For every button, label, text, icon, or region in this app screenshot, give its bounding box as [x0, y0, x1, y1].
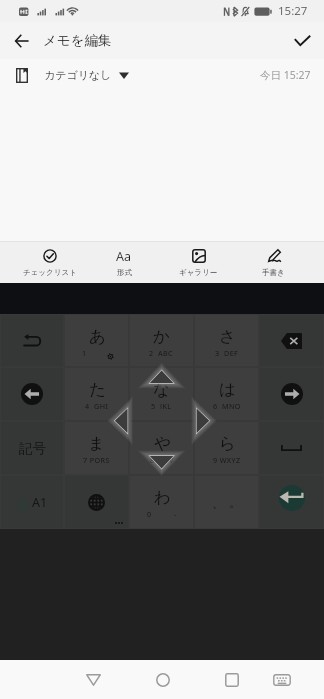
staticText: 記号: [19, 440, 46, 457]
staticText: 8 TUV: [150, 455, 174, 463]
button[interactable]: 🌐: [65, 476, 128, 528]
button[interactable]: チェックリスト: [13, 242, 87, 283]
staticText: な: [153, 379, 170, 400]
button[interactable]: 手書き: [236, 242, 311, 283]
staticText: 0: [147, 509, 152, 517]
button[interactable]: ギャラリー: [161, 242, 236, 283]
button[interactable]: →: [260, 368, 323, 420]
staticText: 15:27: [278, 3, 308, 19]
staticText: -: [174, 509, 177, 517]
staticText: は: [219, 379, 236, 400]
button[interactable]: さ: [195, 315, 258, 366]
staticText: メモを編集: [43, 32, 112, 49]
button[interactable]: な: [130, 368, 193, 420]
button[interactable]: は: [195, 368, 258, 420]
button[interactable]: た: [65, 368, 128, 420]
staticText: Aa: [116, 248, 132, 264]
button[interactable]: ␣: [260, 422, 323, 474]
staticText: 形式: [117, 268, 132, 277]
button[interactable]: 記号: [1, 422, 63, 474]
staticText: 今日 15:27: [260, 68, 311, 82]
staticText: や: [154, 433, 171, 454]
staticText: 2 ABC: [149, 348, 174, 356]
button[interactable]: Back: [0, 22, 43, 59]
staticText: わ: [154, 487, 171, 508]
button[interactable]: Keyboard: [264, 662, 300, 698]
button[interactable]: カテゴリなし: [44, 59, 135, 91]
button[interactable]: ま: [65, 422, 128, 474]
staticText: 3 DEF: [215, 348, 239, 356]
staticText: ま: [88, 433, 105, 454]
button[interactable]: ⌫: [260, 315, 323, 366]
button[interactable]: Aa: [87, 242, 161, 283]
staticText: 6 MNO: [213, 401, 241, 409]
button[interactable]: あ: [65, 315, 128, 366]
staticText: 手書き: [262, 268, 285, 277]
staticText: ら: [219, 433, 236, 454]
staticText: あ: [89, 326, 106, 347]
staticText: 1: [82, 348, 87, 356]
button[interactable]: や: [130, 422, 193, 474]
staticText: ギャラリー: [179, 268, 218, 277]
staticText: あ: [17, 495, 31, 511]
button[interactable]: ↰: [1, 315, 63, 366]
staticText: 。: [229, 495, 241, 510]
button[interactable]: Category: [0, 59, 44, 91]
staticText: チェックリスト: [23, 268, 77, 277]
staticText: た: [89, 379, 106, 400]
button[interactable]: ⏎: [260, 476, 323, 528]
staticText: 9 WXYZ: [213, 455, 241, 463]
staticText: A1: [32, 494, 48, 511]
button[interactable]: か: [130, 315, 193, 366]
staticText: か: [153, 326, 170, 347]
button[interactable]: Back: [59, 660, 128, 699]
button[interactable]: わ: [130, 476, 193, 528]
staticText: さ: [219, 326, 236, 347]
staticText: カテゴリなし: [44, 68, 112, 82]
staticText: 4 GHI: [85, 401, 109, 409]
button[interactable]: Recents: [197, 660, 266, 699]
button[interactable]: Save: [280, 22, 324, 59]
staticText: 5 JKL: [151, 401, 172, 409]
button[interactable]: ←: [1, 368, 63, 420]
button[interactable]: ら: [195, 422, 258, 474]
button[interactable]: Home: [128, 660, 197, 699]
staticText: 7 PQRS: [83, 455, 110, 463]
